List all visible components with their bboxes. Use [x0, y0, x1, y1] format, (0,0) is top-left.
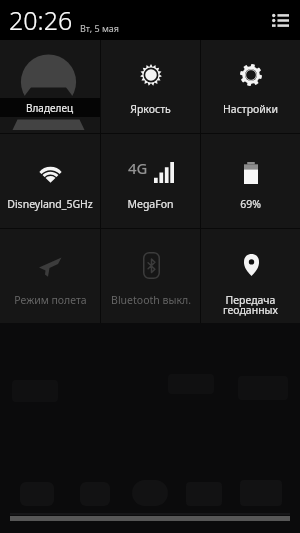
staticText: Владелец	[26, 101, 74, 115]
staticText: Disneyland_5GHz	[7, 197, 93, 211]
staticText: Яркость	[130, 102, 171, 116]
staticText: 69%	[240, 197, 261, 211]
button[interactable]: 4G	[101, 134, 200, 228]
staticText: MegaFon	[127, 197, 174, 211]
staticText: Режим полета	[14, 293, 87, 307]
staticText: 4G	[128, 158, 148, 178]
staticText: 20:26	[9, 3, 73, 37]
staticText: Настройки	[223, 102, 278, 116]
button[interactable]: Яркость	[101, 40, 200, 133]
button[interactable]: Bluetooth выкл.	[101, 229, 200, 323]
button[interactable]: Передача геоданных	[201, 229, 300, 323]
button[interactable]: Disneyland_5GHz	[0, 134, 100, 228]
button[interactable]: Quick settings list	[267, 7, 293, 33]
button[interactable]: Режим полета	[0, 229, 100, 323]
staticText: Передача геоданных	[223, 293, 278, 317]
staticText: Bluetooth выкл.	[111, 293, 191, 307]
button[interactable]: Владелец	[0, 40, 100, 133]
button[interactable]: 69%	[201, 134, 300, 228]
button[interactable]: Настройки	[201, 40, 300, 133]
staticText: Вт, 5 мая	[80, 22, 120, 34]
